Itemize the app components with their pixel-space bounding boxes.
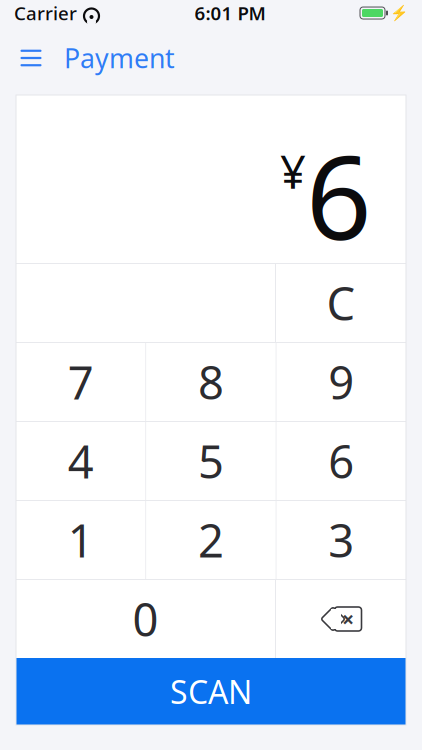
button[interactable]: 3 — [277, 501, 406, 579]
button[interactable]: Delete — [276, 580, 406, 658]
staticText: 6 — [306, 119, 372, 271]
button[interactable]: 9 — [277, 343, 406, 421]
button[interactable]: 1 — [16, 501, 145, 579]
staticText: ¥ — [280, 141, 306, 201]
staticText: 7 — [68, 352, 94, 412]
staticText: 8 — [198, 352, 224, 412]
staticText: SCAN — [170, 670, 252, 713]
button[interactable]: 8 — [146, 343, 276, 421]
staticText: C — [326, 273, 355, 333]
staticText: Payment — [64, 40, 175, 76]
button[interactable]: 4 — [16, 422, 145, 500]
staticText: × — [342, 605, 354, 633]
button[interactable]: C — [276, 264, 406, 342]
button[interactable]: SCAN — [16, 658, 406, 725]
staticText: Carrier — [14, 1, 77, 25]
staticText: ⚡ — [390, 5, 408, 21]
staticText: 9 — [328, 352, 354, 412]
staticText: 6 — [328, 431, 354, 491]
staticText: 6:01 PM — [194, 1, 265, 25]
staticText: 5 — [198, 431, 224, 491]
staticText: 4 — [68, 431, 94, 491]
button[interactable]: Payment — [64, 40, 175, 76]
button[interactable]: 6 — [277, 422, 406, 500]
staticText: 0 — [132, 589, 158, 649]
button[interactable]: 2 — [146, 501, 276, 579]
staticText: 1 — [68, 510, 94, 570]
button[interactable]: 5 — [146, 422, 276, 500]
button[interactable]: Menu — [14, 41, 48, 75]
staticText: 3 — [328, 510, 354, 570]
button[interactable]: 7 — [16, 343, 145, 421]
button[interactable]: 0 — [16, 580, 275, 658]
staticText: 2 — [198, 510, 224, 570]
